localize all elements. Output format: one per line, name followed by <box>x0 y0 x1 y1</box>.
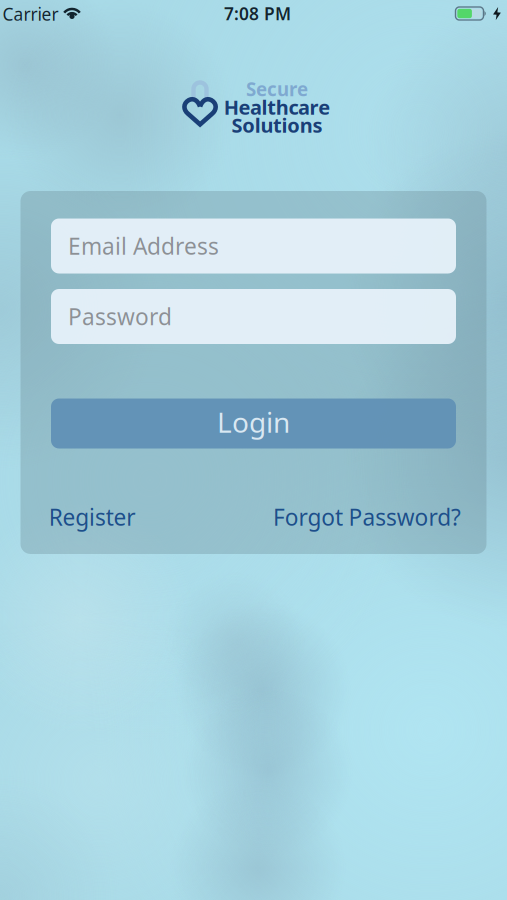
staticText: 7:08 PM <box>224 2 291 25</box>
button[interactable]: Email Address <box>51 218 456 273</box>
staticText: Forgot Password? <box>273 502 461 532</box>
staticText: Solutions <box>232 112 322 138</box>
button[interactable]: Forgot Password? <box>273 502 461 532</box>
button[interactable]: Register <box>49 502 135 532</box>
staticText: Login <box>217 403 290 441</box>
button[interactable]: Password <box>51 289 456 344</box>
staticText: Healthcare <box>224 94 330 120</box>
button[interactable]: Login <box>51 398 456 448</box>
staticText: Register <box>49 502 135 532</box>
staticText: Password <box>68 301 172 331</box>
staticText: Carrier <box>2 2 58 25</box>
staticText: Email Address <box>68 231 219 261</box>
staticText: Secure <box>246 77 308 101</box>
